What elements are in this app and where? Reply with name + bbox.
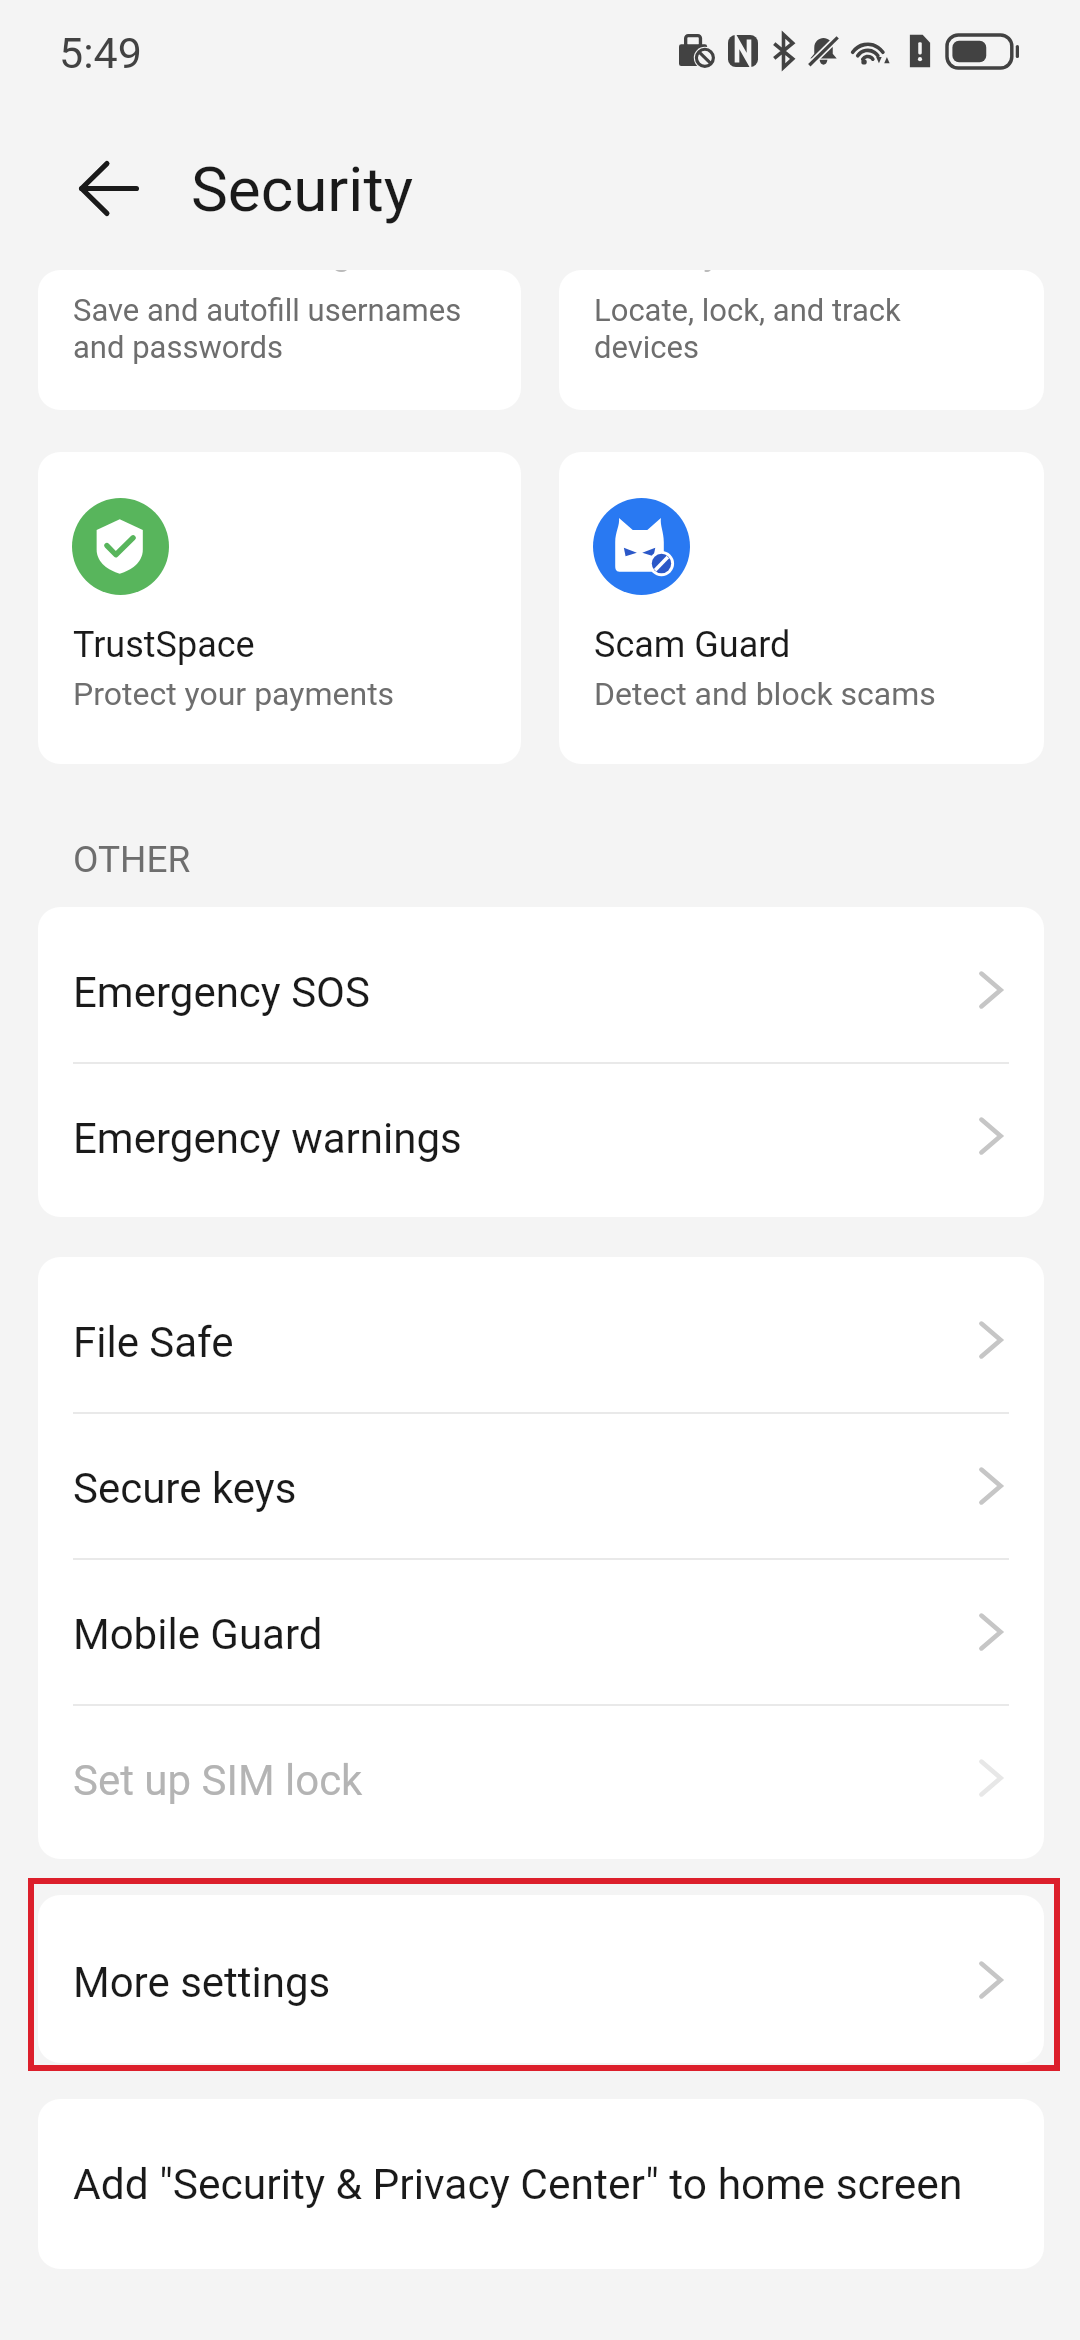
staticText: Password Manager (73, 270, 383, 273)
staticText: Add "Security & Privacy Center" to home … (73, 2160, 963, 2210)
button[interactable]: Password Manager (38, 270, 521, 410)
staticText: File Safe (73, 1318, 234, 1367)
button[interactable]: Secure keys (38, 1412, 1044, 1558)
staticText: Scam Guard (594, 624, 791, 666)
button[interactable]: Emergency SOS (38, 916, 1044, 1062)
staticText: Locate, lock, and track devices (594, 292, 901, 366)
staticText: 5:49 (59, 28, 142, 78)
button[interactable]: Mobile Guard (38, 1558, 1044, 1704)
button[interactable]: File Safe (38, 1266, 1044, 1412)
button[interactable]: Find My Device (559, 270, 1044, 410)
staticText: Emergency SOS (73, 968, 370, 1017)
staticText: Set up SIM lock (73, 1756, 363, 1805)
staticText: Detect and block scams (594, 675, 936, 713)
staticText: Mobile Guard (73, 1610, 323, 1659)
staticText: More settings (73, 1958, 331, 2007)
staticText: Save and autofill usernames and password… (73, 292, 462, 366)
staticText: TrustSpace (73, 624, 255, 666)
staticText: Secure keys (73, 1464, 297, 1513)
button[interactable]: Back (63, 142, 155, 234)
staticText: Protect your payments (73, 675, 395, 713)
staticText: Emergency warnings (73, 1114, 462, 1163)
button[interactable]: Scam Guard (559, 452, 1044, 764)
button[interactable]: Set up SIM lock (38, 1704, 1044, 1850)
staticText: Security (191, 153, 414, 226)
button[interactable]: TrustSpace (38, 452, 521, 764)
button[interactable]: Emergency warnings (38, 1062, 1044, 1208)
button[interactable]: More settings (38, 1904, 1044, 2054)
staticText: Find My Device (594, 270, 836, 273)
button[interactable]: Add "Security & Privacy Center" to home … (38, 2099, 1044, 2269)
staticText: OTHER (73, 838, 191, 881)
